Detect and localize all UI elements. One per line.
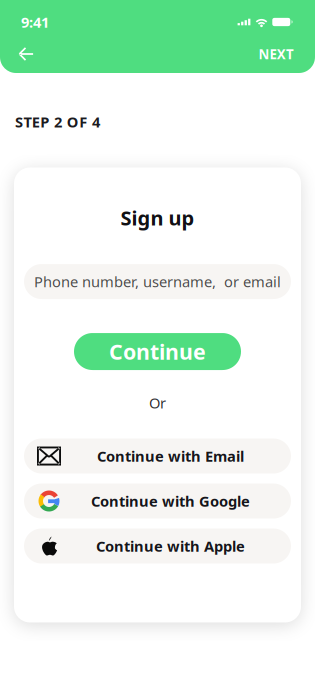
button[interactable]: Back <box>9 39 43 69</box>
staticText: Continue with Google <box>91 491 250 511</box>
staticText: Continue with Email <box>97 446 244 466</box>
button[interactable]: Continue with Email <box>24 438 291 473</box>
button[interactable]: NEXT <box>253 39 299 69</box>
button[interactable]: Continue with Google <box>24 483 291 518</box>
staticText: Sign up <box>120 204 194 231</box>
button[interactable]: Continue with Apple <box>24 528 291 563</box>
staticText: STEP 2 OF 4 <box>15 112 100 131</box>
staticText: Continue with Apple <box>96 536 245 556</box>
button[interactable]: Continue <box>74 333 241 370</box>
staticText: 9:41 <box>21 12 49 32</box>
staticText: NEXT <box>258 45 294 63</box>
staticText: Or <box>149 393 166 412</box>
staticText: Continue <box>109 337 206 366</box>
staticText: Phone number, username, or email <box>34 272 281 291</box>
